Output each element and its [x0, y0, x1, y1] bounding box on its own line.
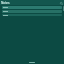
- button[interactable]: Notes: [1, 1, 10, 5]
- button[interactable]: [2, 14, 62, 16]
- button[interactable]: [2, 10, 62, 13]
- staticText: Notes: [1, 1, 10, 5]
- button[interactable]: [2, 6, 62, 9]
- button[interactable]: Search: [59, 1, 63, 5]
